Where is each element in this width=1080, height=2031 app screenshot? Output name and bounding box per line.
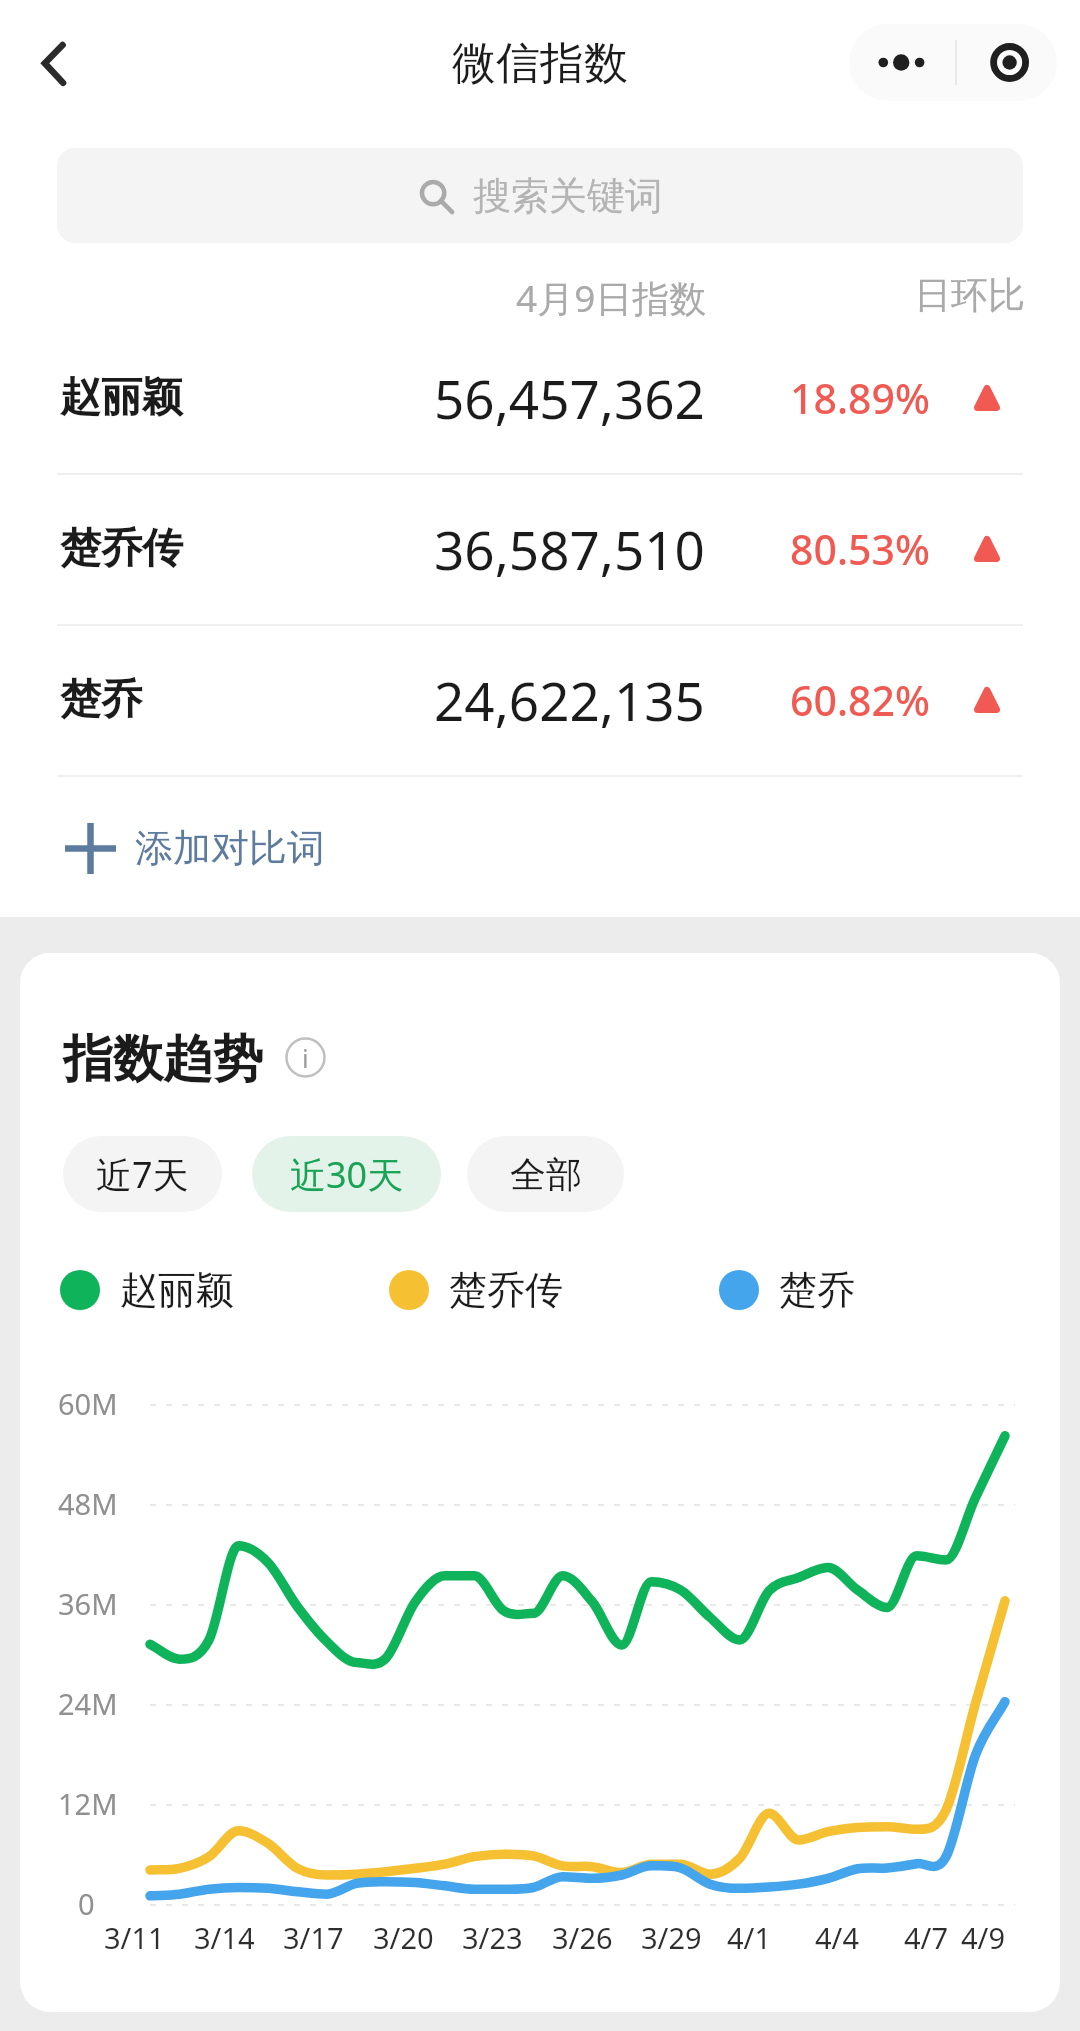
staticText: 微信指数 [452, 36, 628, 91]
staticText: 0 [78, 1884, 95, 1923]
staticText: i [302, 1040, 309, 1075]
staticText: 24,622,135 [434, 664, 705, 736]
staticText: 楚乔传 [60, 523, 183, 575]
staticText: 18.89% [790, 370, 930, 426]
staticText: 3/29 [641, 1918, 702, 1957]
button[interactable]: 楚乔 [0, 625, 1080, 775]
staticText: 36,587,510 [434, 513, 705, 585]
staticText: 3/20 [373, 1918, 434, 1957]
button[interactable]: Back [9, 27, 99, 117]
button[interactable]: More options [849, 24, 953, 101]
button[interactable]: 全部 [467, 1136, 624, 1212]
staticText: 全部 [510, 1152, 582, 1197]
staticText: 添加对比词 [135, 824, 325, 872]
button[interactable]: 赵丽颖 [0, 323, 1080, 473]
button[interactable]: 赵丽颖 [60, 1266, 234, 1314]
button[interactable]: Info [285, 1037, 326, 1078]
staticText: 3/23 [462, 1918, 523, 1957]
staticText: 60.82% [790, 672, 930, 728]
staticText: 3/14 [194, 1918, 255, 1957]
staticText: 60M [58, 1384, 118, 1423]
staticText: 12M [58, 1784, 118, 1823]
staticText: 80.53% [790, 521, 930, 577]
staticText: 4/4 [815, 1918, 859, 1957]
staticText: 日环比 [914, 272, 1025, 319]
staticText: 4/9 [961, 1918, 1005, 1957]
staticText: 56,457,362 [434, 362, 705, 434]
button[interactable]: 楚乔传 [389, 1266, 563, 1314]
staticText: 搜索关键词 [473, 172, 663, 220]
staticText: 楚乔传 [449, 1266, 563, 1314]
staticText: 24M [58, 1684, 118, 1723]
staticText: 3/17 [283, 1918, 344, 1957]
staticText: 3/26 [552, 1918, 613, 1957]
staticText: 3/11 [104, 1918, 165, 1957]
staticText: 指数趋势 [63, 1028, 263, 1091]
button[interactable]: 搜索关键词 [57, 148, 1023, 243]
staticText: 48M [58, 1484, 118, 1523]
staticText: 赵丽颖 [60, 372, 183, 424]
staticText: 近7天 [96, 1150, 189, 1199]
button[interactable]: 楚乔 [719, 1266, 855, 1314]
button[interactable]: 近30天 [252, 1136, 441, 1212]
staticText: 楚乔 [779, 1266, 855, 1314]
staticText: 4/1 [727, 1918, 771, 1957]
staticText: 36M [58, 1584, 118, 1623]
button[interactable]: 添加对比词 [0, 800, 1080, 896]
button[interactable]: 近7天 [63, 1136, 222, 1212]
staticText: 近30天 [290, 1150, 404, 1199]
staticText: 楚乔 [60, 674, 142, 726]
staticText: 4/7 [904, 1918, 948, 1957]
button[interactable]: Close mini program [953, 24, 1057, 101]
button[interactable]: 楚乔传 [0, 474, 1080, 624]
staticText: 赵丽颖 [120, 1266, 234, 1314]
staticText: 4月9日指数 [516, 272, 707, 323]
